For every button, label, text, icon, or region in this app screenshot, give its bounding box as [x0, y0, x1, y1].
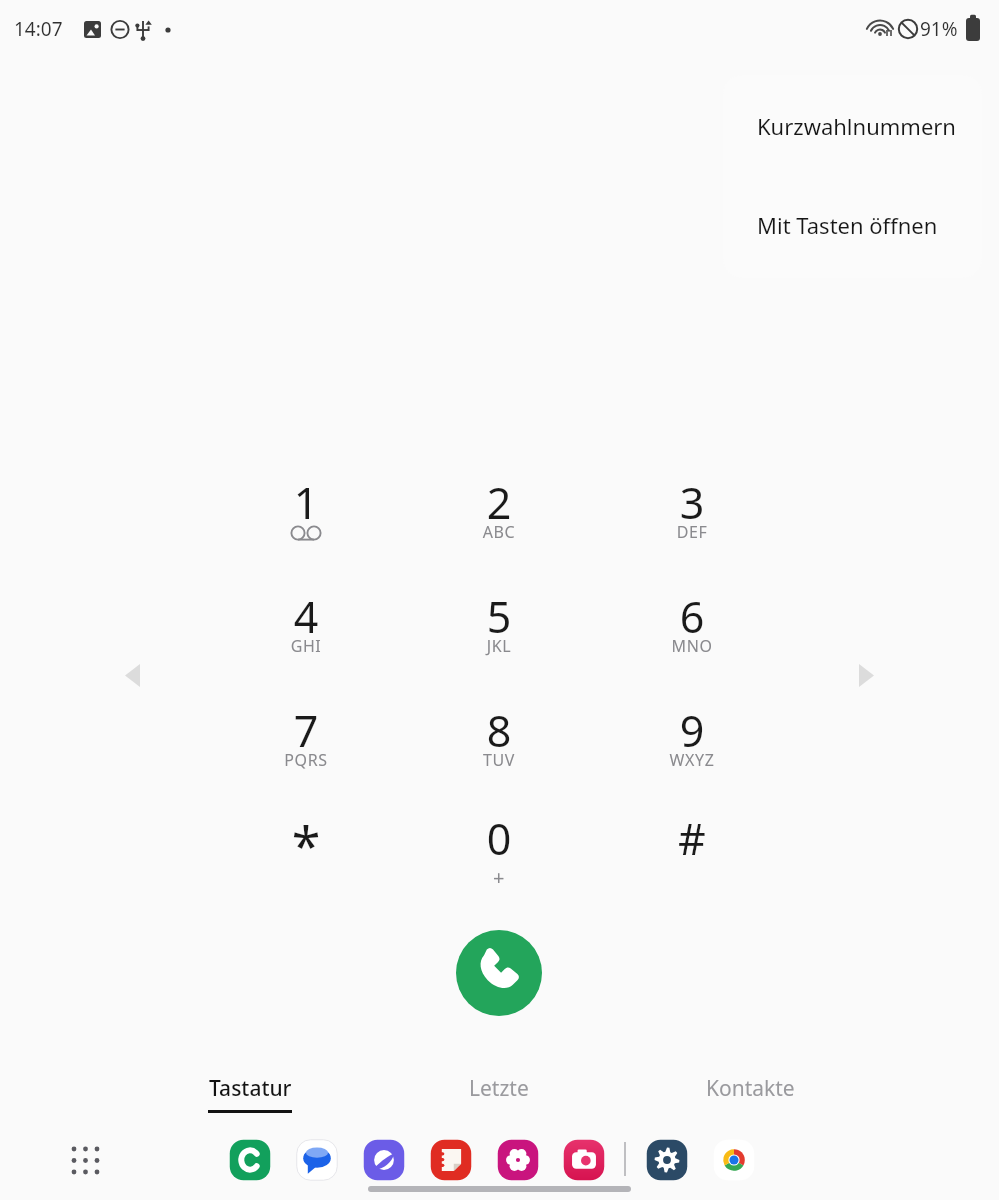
- button[interactable]: Key 0: [409, 806, 589, 898]
- button[interactable]: App: [561, 1137, 607, 1183]
- button[interactable]: Key 9: [602, 698, 782, 790]
- staticText: Kurzwahlnummern: [757, 111, 956, 141]
- staticText: MNO: [632, 635, 752, 657]
- staticText: 3: [632, 473, 752, 532]
- button[interactable]: Key 4: [216, 584, 396, 676]
- button[interactable]: Apps: [62, 1137, 106, 1181]
- button[interactable]: App: [361, 1137, 407, 1183]
- staticText: Mit Tasten öffnen: [757, 210, 938, 240]
- button[interactable]: App: [711, 1137, 757, 1183]
- button[interactable]: Kontakte: [706, 1074, 795, 1103]
- staticText: GHI: [246, 635, 366, 657]
- button[interactable]: Key 6: [602, 584, 782, 676]
- staticText: +: [439, 864, 559, 891]
- staticText: WXYZ: [632, 749, 752, 771]
- staticText: 6: [632, 587, 752, 646]
- button[interactable]: Key 2: [409, 470, 589, 562]
- staticText: *: [246, 809, 366, 880]
- staticText: 0: [439, 809, 559, 868]
- staticText: PQRS: [246, 749, 366, 771]
- staticText: 8: [439, 701, 559, 760]
- button[interactable]: Key *: [216, 806, 396, 898]
- staticText: ABC: [439, 521, 559, 543]
- button[interactable]: Key 8: [409, 698, 589, 790]
- staticText: 4: [246, 587, 366, 646]
- staticText: 2: [439, 473, 559, 532]
- button[interactable]: Call: [456, 930, 542, 1016]
- staticText: #: [632, 809, 752, 868]
- staticText: TUV: [439, 749, 559, 771]
- button[interactable]: Key 7: [216, 698, 396, 790]
- staticText: 91%: [920, 16, 958, 42]
- button[interactable]: App: [294, 1137, 340, 1183]
- staticText: 14:07: [14, 16, 63, 42]
- button[interactable]: App: [227, 1137, 273, 1183]
- button[interactable]: Key 5: [409, 584, 589, 676]
- button[interactable]: Letzte: [469, 1074, 529, 1103]
- button[interactable]: Key #: [602, 806, 782, 898]
- button[interactable]: Key 1: [216, 470, 396, 562]
- button[interactable]: Tastatur: [208, 1074, 292, 1113]
- staticText: Letzte: [469, 1074, 529, 1103]
- button[interactable]: Mit Tasten öffnen: [723, 210, 982, 240]
- staticText: 1: [246, 473, 366, 532]
- button[interactable]: App: [428, 1137, 474, 1183]
- staticText: 9: [632, 701, 752, 760]
- staticText: Kontakte: [706, 1074, 795, 1103]
- staticText: Tastatur: [209, 1074, 292, 1103]
- button[interactable]: Key 3: [602, 470, 782, 562]
- staticText: JKL: [439, 635, 559, 657]
- button[interactable]: Kurzwahlnummern: [723, 111, 982, 141]
- staticText: 7: [246, 701, 366, 760]
- button[interactable]: App: [495, 1137, 541, 1183]
- staticText: 5: [439, 587, 559, 646]
- staticText: DEF: [632, 521, 752, 543]
- button[interactable]: App: [644, 1137, 690, 1183]
